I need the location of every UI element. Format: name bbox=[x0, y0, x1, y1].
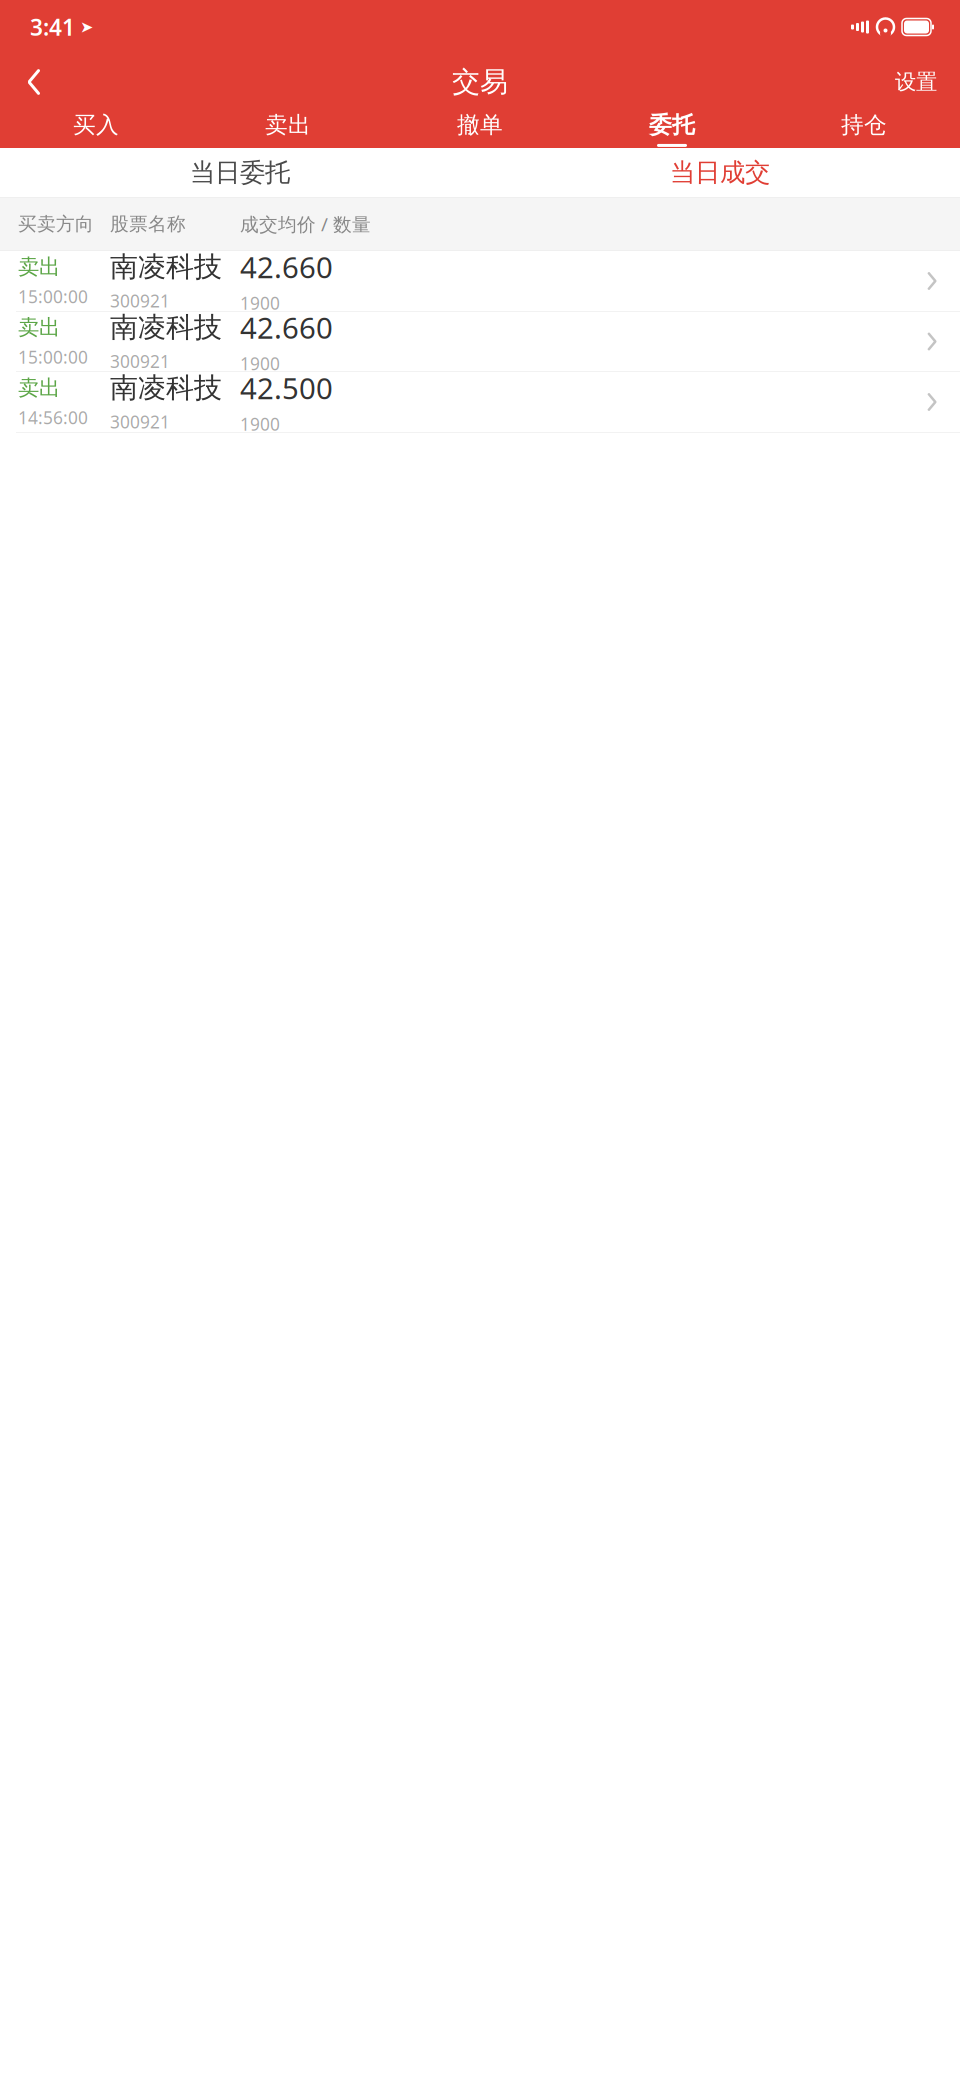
staticText: ➤ bbox=[80, 18, 93, 36]
staticText: 卖出 bbox=[18, 254, 60, 280]
staticText: 卖出 bbox=[265, 111, 311, 139]
staticText: 买入 bbox=[73, 111, 119, 139]
button[interactable]: 持仓 bbox=[768, 110, 960, 148]
staticText: 42.500 bbox=[240, 368, 333, 407]
button[interactable]: 委托 bbox=[576, 110, 768, 148]
staticText: 设置 bbox=[895, 69, 937, 95]
button[interactable]: 卖出 bbox=[0, 311, 960, 371]
staticText: 14:56:00 bbox=[18, 406, 88, 429]
staticText: 1900 bbox=[240, 352, 280, 375]
button[interactable]: 当日委托 bbox=[0, 148, 480, 197]
staticText: 南凌科技 bbox=[110, 371, 222, 405]
staticText: 南凌科技 bbox=[110, 310, 222, 345]
staticText: 持仓 bbox=[841, 111, 887, 139]
staticText: 买卖方向 bbox=[18, 212, 94, 235]
button[interactable]: 卖出 bbox=[0, 372, 960, 432]
staticText: 股票名称 bbox=[110, 212, 186, 235]
button[interactable]: 设置 bbox=[885, 60, 947, 104]
staticText: 15:00:00 bbox=[18, 285, 88, 308]
staticText: 3:41 bbox=[30, 12, 75, 42]
staticText: 42.660 bbox=[240, 308, 333, 347]
staticText: 42.660 bbox=[240, 247, 333, 286]
staticText: 300921 bbox=[110, 289, 170, 312]
staticText: 交易 bbox=[452, 65, 508, 99]
staticText: 撤单 bbox=[457, 111, 503, 139]
staticText: 当日委托 bbox=[190, 157, 290, 188]
staticText: 南凌科技 bbox=[110, 250, 222, 284]
button[interactable]: 撤单 bbox=[384, 110, 576, 148]
staticText: 当日成交 bbox=[670, 157, 770, 188]
staticText: 300921 bbox=[110, 410, 170, 433]
button[interactable]: 买入 bbox=[0, 110, 192, 148]
staticText: 300921 bbox=[110, 350, 170, 373]
staticText: 1900 bbox=[240, 291, 280, 314]
button[interactable]: Back bbox=[6, 60, 62, 104]
staticText: 成交均价 / 数量 bbox=[240, 212, 371, 236]
staticText: 委托 bbox=[649, 111, 695, 139]
button[interactable]: 卖出 bbox=[192, 110, 384, 148]
staticText: 15:00:00 bbox=[18, 346, 88, 369]
staticText: 卖出 bbox=[18, 314, 60, 341]
button[interactable]: 卖出 bbox=[0, 251, 960, 311]
staticText: 卖出 bbox=[18, 375, 60, 401]
button[interactable]: 当日成交 bbox=[480, 148, 960, 197]
staticText: 1900 bbox=[240, 412, 280, 435]
